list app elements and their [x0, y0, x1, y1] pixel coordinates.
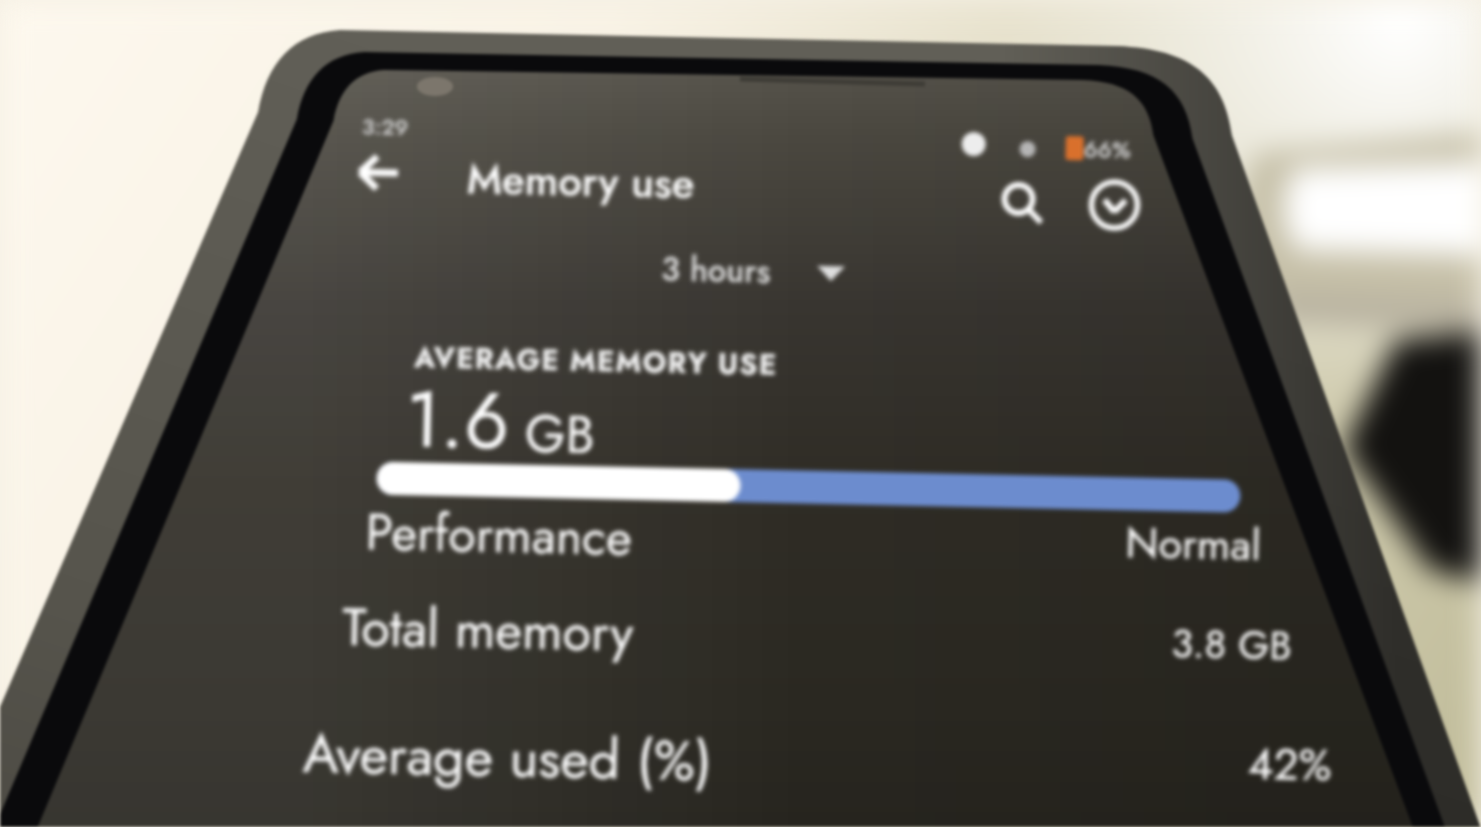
staticText: 1.6: [405, 363, 511, 478]
staticText: 3.8 GB: [1171, 614, 1293, 675]
staticText: Memory use: [466, 148, 695, 214]
staticText: Average used (%): [302, 713, 714, 801]
button[interactable]: Total memory: [334, 583, 1236, 698]
staticText: Normal: [1125, 511, 1262, 576]
staticText: Performance: [365, 495, 633, 573]
staticText: AVERAGE MEMORY USE: [414, 336, 778, 386]
staticText: 3:29: [362, 110, 409, 143]
button[interactable]: 3 hours: [660, 245, 799, 296]
button[interactable]: Average used (%): [296, 707, 1298, 827]
staticText: Total memory: [342, 589, 634, 670]
button[interactable]: Search: [996, 179, 1051, 234]
staticText: GB: [509, 395, 595, 472]
staticText: 66%: [1083, 132, 1132, 166]
button[interactable]: Navigate up: [348, 143, 408, 202]
button[interactable]: Help: [1088, 180, 1145, 238]
staticText: 42%: [1247, 732, 1332, 798]
staticText: 3 hours: [660, 245, 771, 296]
